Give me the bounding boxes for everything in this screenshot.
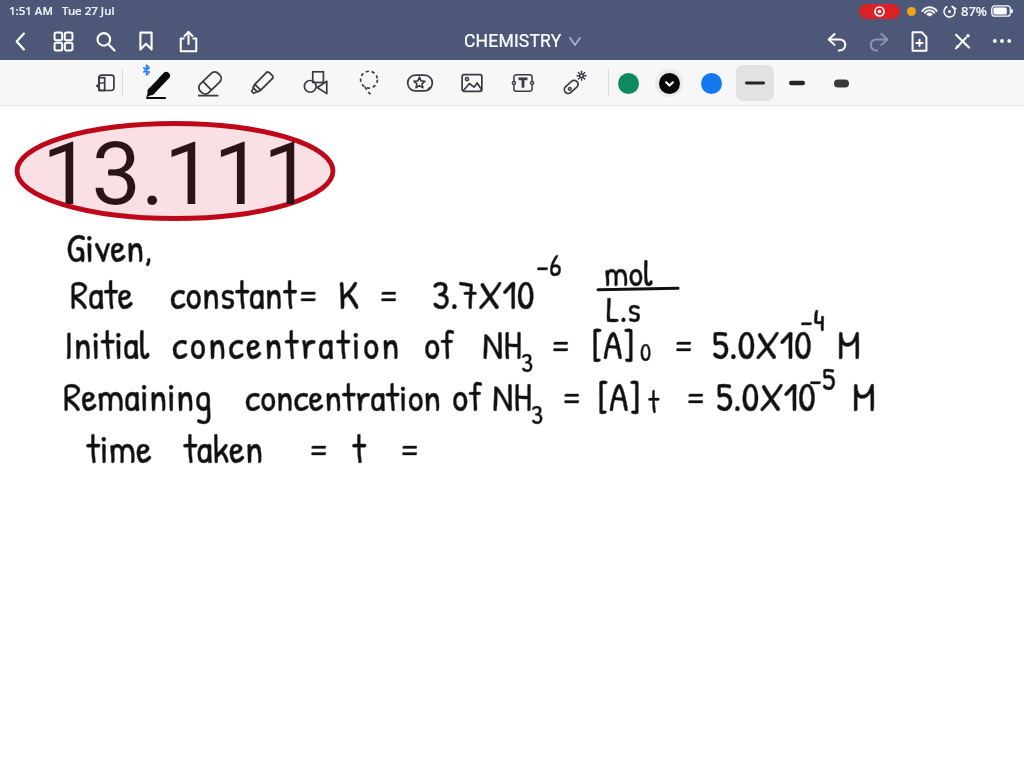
staticText: 87% — [961, 2, 987, 20]
button[interactable]: Eraser — [184, 60, 236, 106]
staticText: = — [307, 421, 330, 475]
staticText: = — [377, 267, 400, 321]
staticText: = — [684, 369, 707, 423]
staticText: 3 — [521, 344, 534, 381]
staticText: L.s — [606, 284, 641, 333]
staticText: mol — [604, 248, 653, 297]
staticText: [A] — [597, 369, 641, 423]
button[interactable]: Shapes — [289, 60, 341, 106]
staticText: of — [452, 369, 483, 423]
button[interactable]: Split page — [80, 60, 132, 106]
staticText: time — [86, 421, 152, 475]
staticText: 3 — [531, 396, 544, 433]
button[interactable]: Close — [942, 22, 982, 60]
button[interactable]: Sticker — [394, 60, 446, 106]
staticText: = — [672, 317, 695, 371]
staticText: 3.7X10 — [432, 267, 535, 321]
staticText: constant= — [170, 267, 320, 321]
button[interactable]: Text — [497, 60, 549, 106]
staticText: = — [549, 317, 572, 371]
staticText: M — [852, 369, 876, 423]
button[interactable]: Bookmark — [126, 22, 166, 60]
staticText: Initial — [64, 317, 150, 371]
staticText: constant= — [170, 267, 320, 321]
button[interactable]: Thin stroke — [736, 65, 774, 101]
staticText: M — [837, 317, 861, 371]
staticText: Rate — [70, 267, 134, 321]
staticText: = — [398, 421, 421, 475]
staticText: [A] — [591, 317, 635, 371]
staticText: K — [338, 267, 359, 321]
staticText: -6 — [536, 243, 562, 286]
button[interactable]: Image — [446, 60, 498, 106]
staticText: of — [452, 369, 483, 423]
staticText: = — [307, 421, 330, 475]
staticText: K — [338, 267, 359, 321]
button[interactable]: Medium stroke — [778, 60, 816, 106]
staticText: t — [648, 380, 660, 423]
staticText: = — [672, 317, 695, 371]
button[interactable]: Thick stroke — [822, 60, 860, 106]
button[interactable]: Green colour — [610, 60, 646, 106]
button[interactable]: Lasso — [343, 60, 395, 106]
staticText: CHEMISTRY — [464, 31, 562, 52]
staticText: 3.7X10 — [432, 267, 535, 321]
staticText: of — [424, 317, 455, 371]
button[interactable]: More — [982, 22, 1022, 60]
staticText: concentration — [245, 370, 441, 423]
button[interactable]: Back — [0, 22, 40, 60]
button[interactable]: Undo — [817, 22, 857, 60]
staticText: time — [86, 421, 152, 475]
staticText: = — [684, 369, 707, 423]
staticText: NH — [482, 317, 522, 371]
staticText: 0 — [640, 335, 652, 369]
button[interactable]: Highlighter — [236, 60, 288, 106]
staticText: t — [648, 380, 660, 423]
button[interactable]: Search — [85, 22, 125, 60]
button[interactable]: Redo — [858, 22, 898, 60]
button[interactable]: Black colour selected — [651, 60, 687, 106]
staticText: 5.0X10 — [716, 369, 816, 423]
staticText: = — [377, 267, 400, 321]
staticText: taken — [183, 421, 264, 475]
staticText: mol — [604, 248, 653, 297]
staticText: M — [837, 317, 861, 371]
staticText: t — [352, 421, 366, 475]
button[interactable]: Pen — [131, 60, 183, 106]
staticText: NH — [492, 369, 532, 423]
staticText: Initial — [64, 317, 150, 371]
staticText: L.s — [606, 284, 641, 333]
staticText: Given, — [66, 220, 153, 274]
button[interactable]: Add page — [899, 22, 939, 60]
staticText: 3 — [521, 344, 534, 381]
staticText: 5.0X10 — [716, 369, 816, 423]
staticText: concentration — [172, 317, 402, 371]
staticText: 13.111 — [42, 122, 313, 212]
button[interactable]: Blue colour — [693, 60, 729, 106]
staticText: -4 — [800, 298, 825, 341]
button[interactable]: Share — [168, 22, 208, 60]
staticText: taken — [183, 421, 264, 475]
staticText: NH — [482, 317, 522, 371]
button[interactable]: Pages — [43, 22, 83, 60]
button[interactable]: CHEMISTRY — [464, 22, 580, 60]
staticText: concentration — [172, 317, 402, 371]
staticText: concentration — [245, 370, 441, 423]
staticText: 1:51 AM — [9, 3, 53, 19]
staticText: = — [549, 317, 572, 371]
staticText: = — [560, 369, 583, 423]
staticText: 0 — [640, 335, 652, 369]
staticText: -4 — [800, 298, 825, 341]
staticText: [A] — [597, 369, 641, 423]
staticText: Given, — [66, 220, 153, 274]
staticText: 3 — [531, 396, 544, 433]
staticText: -5 — [809, 357, 836, 400]
staticText: = — [398, 421, 421, 475]
staticText: t — [352, 421, 366, 475]
staticText: -6 — [536, 243, 562, 286]
staticText: = — [560, 369, 583, 423]
staticText: Tue 27 Jul — [62, 3, 115, 19]
staticText: M — [852, 369, 876, 423]
staticText: Remaining — [63, 369, 212, 423]
button[interactable]: Magic — [548, 60, 600, 106]
